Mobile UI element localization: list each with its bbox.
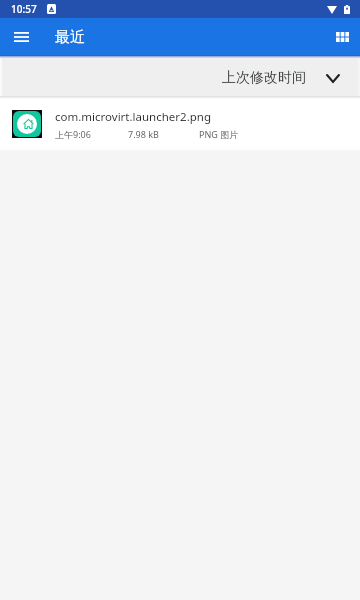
- button[interactable]: Grid view: [322, 18, 360, 56]
- button[interactable]: Show roots: [7, 23, 35, 51]
- button[interactable]: 上次修改时间: [222, 59, 340, 97]
- staticText: PNG 图片: [199, 128, 239, 140]
- staticText: 最近: [55, 28, 85, 47]
- staticText: 7.98 kB: [128, 128, 199, 140]
- button[interactable]: com.microvirt.launcher2.png: [0, 99, 360, 149]
- staticText: 10:57: [11, 2, 37, 16]
- staticText: 上次修改时间: [222, 69, 306, 87]
- staticText: 上午9:06: [55, 128, 128, 140]
- staticText: com.microvirt.launcher2.png: [55, 109, 211, 125]
